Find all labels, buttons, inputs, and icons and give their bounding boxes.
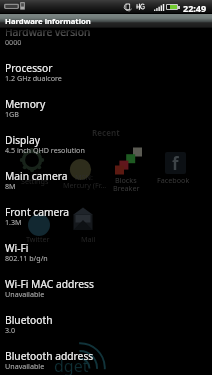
staticText: 8M bbox=[5, 181, 16, 191]
button[interactable]: Main camera bbox=[0, 170, 212, 206]
staticText: Hardware information bbox=[5, 16, 91, 26]
staticText: Mercury (Fr... bbox=[63, 180, 107, 190]
staticText: Unavailable bbox=[5, 289, 45, 299]
staticText: Unavailable bbox=[5, 361, 45, 371]
staticText: Display bbox=[5, 133, 40, 147]
staticText: Wi-Fi MAC address bbox=[5, 277, 94, 291]
staticText: Bluetooth bbox=[5, 313, 53, 327]
button[interactable]: Memory bbox=[0, 98, 212, 134]
staticText: MSN: bbox=[75, 172, 93, 182]
staticText: Breaker bbox=[113, 183, 140, 193]
button[interactable]: Display bbox=[0, 134, 212, 170]
button[interactable]: Wi-Fi bbox=[0, 242, 212, 278]
staticText: 4.5 inch QHD resolution bbox=[5, 145, 85, 155]
staticText: Memory bbox=[5, 97, 46, 111]
staticText: Front camera bbox=[5, 205, 70, 219]
staticText: 1.2 GHz dualcore bbox=[5, 73, 62, 83]
staticText: Blocks bbox=[115, 175, 137, 185]
button[interactable]: Bluetooth bbox=[0, 314, 212, 350]
staticText: Hardware version bbox=[5, 29, 91, 39]
staticText: 1.3M bbox=[5, 217, 22, 227]
staticText: Wi-Fi bbox=[5, 241, 29, 255]
staticText: Main camera bbox=[5, 169, 68, 183]
staticText: Recent bbox=[92, 127, 120, 138]
button[interactable]: Front camera bbox=[0, 206, 212, 242]
staticText: 0000 bbox=[5, 37, 22, 47]
button[interactable]: Processor bbox=[0, 62, 212, 98]
button[interactable]: Wi-Fi MAC address bbox=[0, 278, 212, 314]
staticText: 3.0 bbox=[5, 325, 16, 335]
staticText: Bluetooth address bbox=[5, 349, 94, 363]
staticText: Facebook bbox=[157, 175, 190, 185]
staticText: dget bbox=[54, 355, 89, 375]
staticText: Twitter bbox=[26, 234, 50, 244]
staticText: Mail bbox=[81, 234, 96, 244]
staticText: 802.11 b/g/n bbox=[5, 253, 48, 263]
staticText: 22:49 bbox=[183, 2, 207, 14]
button[interactable]: Bluetooth address bbox=[0, 350, 212, 372]
staticText: f bbox=[172, 152, 179, 174]
button[interactable]: Hardware version bbox=[0, 29, 212, 62]
staticText: Settings bbox=[21, 176, 49, 186]
staticText: 1GB bbox=[5, 109, 19, 119]
staticText: Processor bbox=[5, 61, 53, 75]
